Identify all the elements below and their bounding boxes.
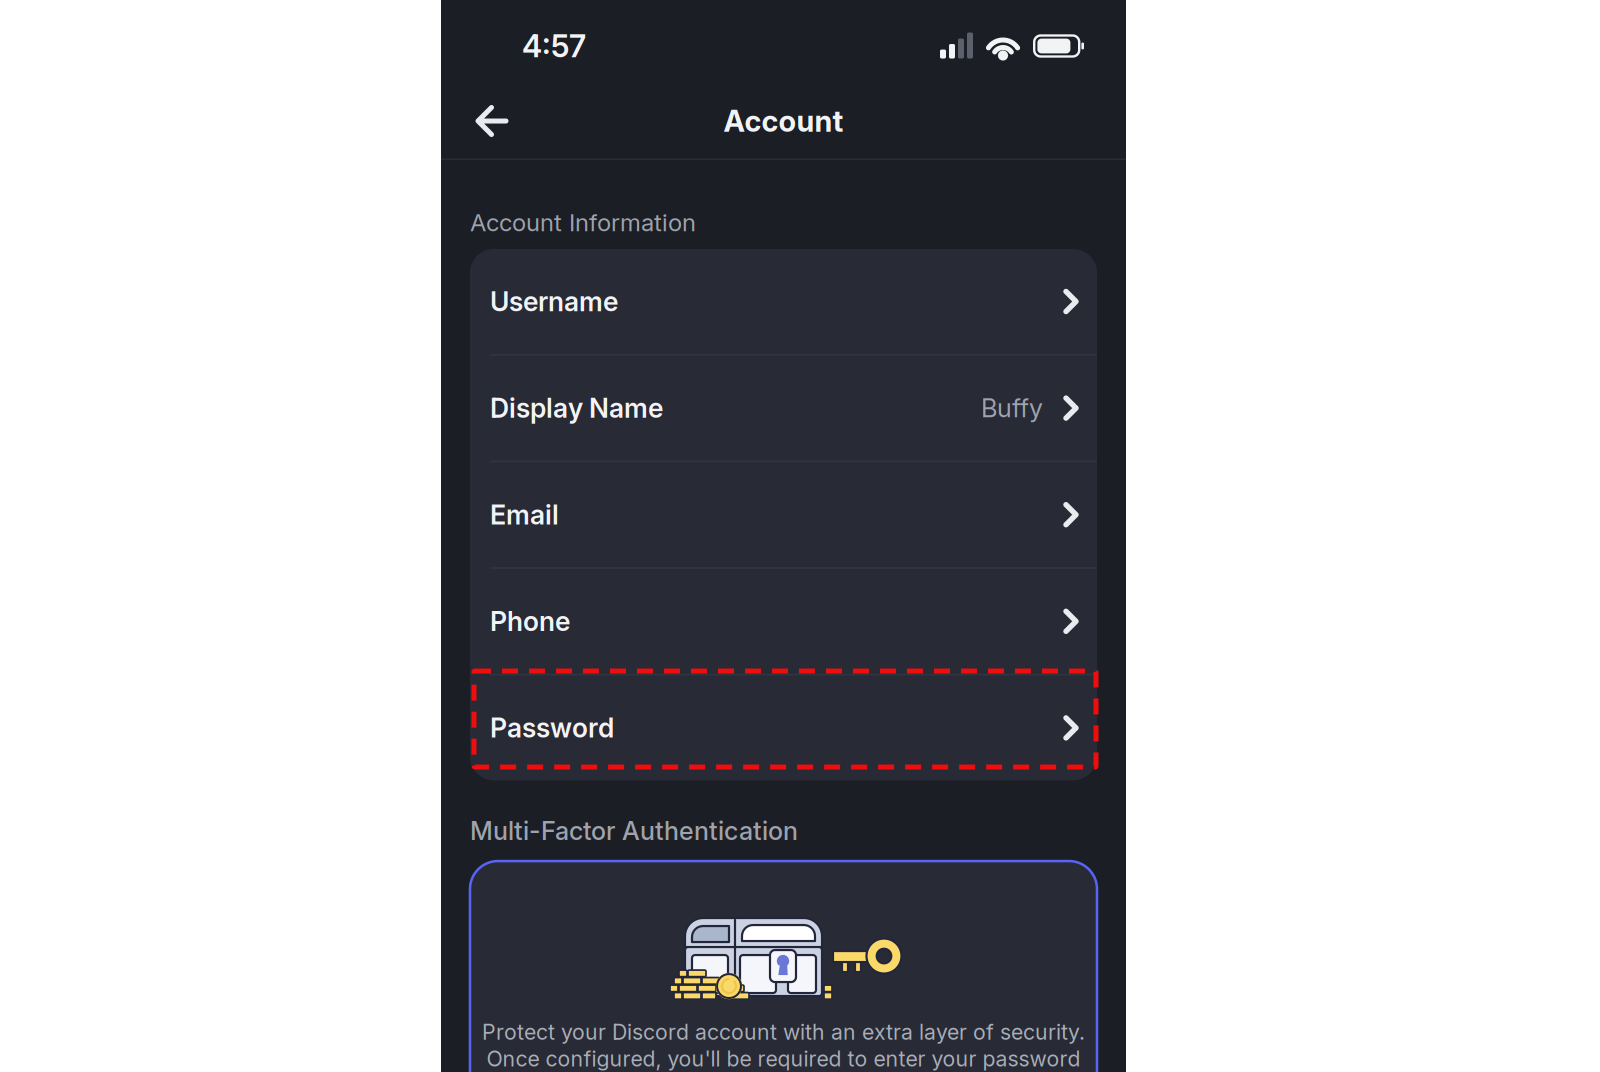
- staticText: Once configured, you'll be required to e…: [486, 1046, 1080, 1072]
- staticText: Multi-Factor Authentication: [470, 815, 798, 846]
- button[interactable]: Username: [470, 249, 1097, 354]
- staticText: 4:57: [522, 27, 586, 64]
- staticText: Display Name: [490, 392, 663, 424]
- staticText: Phone: [490, 605, 570, 637]
- staticText: Email: [490, 499, 559, 531]
- button[interactable]: Phone: [470, 569, 1097, 674]
- button[interactable]: Back: [458, 82, 526, 160]
- button[interactable]: Password: [470, 675, 1097, 780]
- staticText: Username: [490, 285, 618, 318]
- staticText: Account: [723, 103, 843, 139]
- staticText: Protect your Discord account with an ext…: [482, 1019, 1085, 1045]
- button[interactable]: Display Name: [470, 356, 1097, 461]
- staticText: Buffy: [981, 393, 1043, 423]
- staticText: Password: [490, 712, 614, 744]
- button[interactable]: Email: [470, 462, 1097, 567]
- staticText: Account Information: [470, 208, 696, 237]
